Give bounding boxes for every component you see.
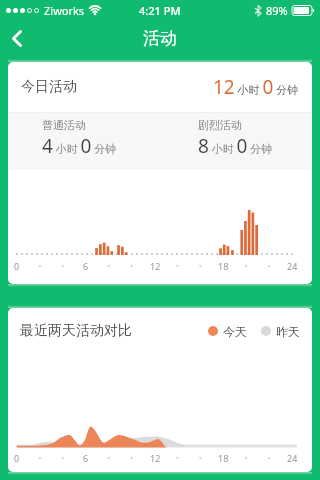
staticText: 8 小时 0 分钟 [198,133,273,159]
staticText: 4:21 PM [139,3,181,18]
staticText: 24 [287,452,298,464]
staticText: 12 小时 0 分钟 [213,74,299,100]
staticText: 24 [287,260,298,272]
staticText: 0 [14,452,20,464]
staticText: 普通活动 [42,118,86,132]
staticText: 剧烈活动 [198,118,242,132]
staticText: 6 [83,260,89,272]
staticText: 6 [83,452,89,464]
staticText: 最近两天活动对比 [20,322,132,340]
staticText: Ziworks [44,3,85,18]
staticText: 12 [150,452,161,464]
staticText: 12 [150,260,161,272]
staticText: 活动 [143,28,177,49]
staticText: 0 [14,260,20,272]
staticText: 18 [218,260,229,272]
staticText: 89% [266,3,288,18]
staticText: 今日活动 [21,78,77,96]
staticText: 4 小时 0 分钟 [42,133,117,159]
button[interactable]: 最近两天活动对比 [8,308,312,472]
staticText: 昨天 [276,324,300,339]
button[interactable] [0,20,40,56]
button[interactable]: 今日活动 [8,62,312,284]
staticText: 今天 [223,324,247,339]
staticText: 18 [218,452,229,464]
